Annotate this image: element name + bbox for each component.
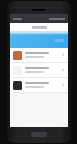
button[interactable] [10,78,68,93]
button[interactable] [10,63,68,78]
button[interactable] [10,48,68,63]
button[interactable]: Home [31,132,47,137]
button[interactable] [10,32,68,48]
